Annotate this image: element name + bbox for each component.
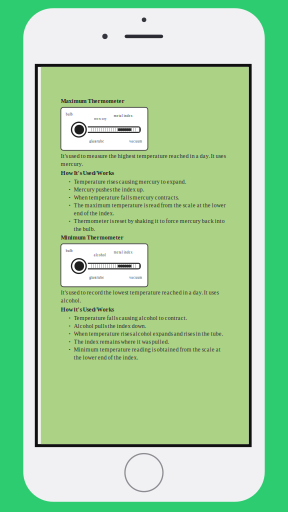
staticText: bulb bbox=[66, 112, 73, 116]
staticText: • bbox=[69, 179, 71, 184]
staticText: When temperature rises alcohol expands a… bbox=[74, 331, 223, 337]
staticText: It's used to record the lowest temperatu… bbox=[61, 289, 219, 304]
staticText: Temperature rises causing mercury to exp… bbox=[74, 178, 186, 185]
staticText: vacuum bbox=[129, 276, 142, 280]
staticText: Minimum Thermometer bbox=[61, 234, 124, 241]
staticText: Thermometer is reset by shaking it to fo… bbox=[74, 218, 225, 232]
staticText: Maximum Thermometer bbox=[61, 98, 125, 104]
staticText: mercury bbox=[94, 117, 107, 120]
staticText: • bbox=[69, 347, 71, 352]
staticText: metal index bbox=[114, 114, 133, 118]
staticText: • bbox=[69, 315, 71, 321]
staticText: • bbox=[69, 187, 71, 192]
staticText: Alcohol pulls the index down. bbox=[74, 323, 146, 329]
staticText: • bbox=[69, 202, 71, 208]
staticText: metal index bbox=[114, 250, 133, 254]
staticText: • bbox=[69, 339, 71, 344]
staticText: When temperature falls mercury contracts… bbox=[74, 194, 179, 201]
staticText: The maximum temperature is read from the… bbox=[74, 202, 226, 216]
staticText: • bbox=[69, 323, 71, 328]
staticText: How it's Used/Works bbox=[61, 306, 114, 313]
staticText: Minimum temperature reading is obtained … bbox=[74, 346, 221, 361]
staticText: • bbox=[69, 195, 71, 200]
staticText: Temperature falls causing alcohol to con… bbox=[74, 315, 187, 321]
staticText: bulb bbox=[66, 249, 73, 253]
staticText: glass tube bbox=[89, 139, 104, 143]
staticText: vacuum bbox=[129, 139, 142, 143]
staticText: glass tube bbox=[89, 276, 104, 280]
staticText: The index remains where it was pulled. bbox=[74, 339, 169, 345]
staticText: • bbox=[69, 331, 71, 336]
staticText: It's used to measure the highest tempera… bbox=[61, 153, 226, 167]
staticText: Mercury pushes the index up. bbox=[74, 186, 144, 193]
staticText: • bbox=[69, 218, 71, 224]
staticText: alcohol bbox=[94, 253, 106, 257]
staticText: How It's Used/Works bbox=[61, 170, 114, 176]
